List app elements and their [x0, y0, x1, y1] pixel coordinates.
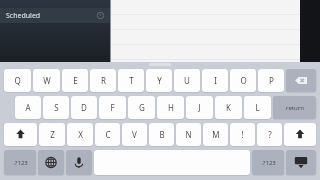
button[interactable]: E — [62, 69, 88, 92]
button[interactable]: ? — [257, 123, 282, 146]
button[interactable]: N — [176, 123, 201, 146]
staticText: return — [286, 104, 304, 112]
button[interactable]: D — [71, 96, 97, 119]
staticText: G — [139, 102, 145, 113]
staticText: X — [78, 129, 83, 140]
staticText: .?123 — [261, 159, 276, 167]
staticText: H — [168, 102, 174, 113]
staticText: R — [101, 75, 106, 86]
staticText: M — [212, 129, 220, 140]
staticText: K — [226, 102, 231, 113]
button[interactable]: .?123 — [252, 150, 284, 175]
staticText: Q — [14, 75, 21, 86]
button[interactable]: S — [43, 96, 69, 119]
button[interactable]: O — [230, 69, 256, 92]
staticText: T — [129, 75, 134, 86]
button[interactable]: I — [202, 69, 228, 92]
staticText: J — [198, 102, 201, 113]
staticText: Y — [157, 75, 162, 86]
staticText: U — [184, 75, 190, 86]
button[interactable]: return — [273, 96, 316, 119]
staticText: P — [269, 75, 274, 86]
staticText: Z — [50, 129, 55, 140]
staticText: C — [105, 129, 111, 140]
staticText: .?123 — [13, 159, 28, 167]
button[interactable]: Hide keyboard — [286, 150, 316, 175]
button[interactable]: L — [244, 96, 271, 119]
button[interactable]: W — [33, 69, 60, 92]
button[interactable]: M — [203, 123, 228, 146]
button[interactable]: J — [186, 96, 213, 119]
button[interactable]: K — [215, 96, 242, 119]
button[interactable]: ! — [230, 123, 255, 146]
staticText: I — [214, 75, 217, 86]
button[interactable]: R — [90, 69, 116, 92]
button[interactable]: Q — [4, 69, 31, 92]
button[interactable]: H — [157, 96, 184, 119]
staticText: N — [185, 129, 192, 140]
button[interactable]: .?123 — [4, 150, 36, 175]
button[interactable]: Shift — [284, 123, 316, 146]
button[interactable]: Scheduled — [0, 8, 110, 23]
staticText: Scheduled — [6, 11, 41, 21]
button[interactable]: Backspace — [286, 69, 316, 92]
button[interactable]: P — [258, 69, 284, 92]
button[interactable]: Y — [146, 69, 172, 92]
staticText: B — [159, 129, 165, 140]
staticText: F — [110, 102, 115, 113]
button[interactable]: Dictation — [66, 150, 92, 175]
button[interactable]: V — [122, 123, 147, 146]
button[interactable]: B — [149, 123, 174, 146]
button[interactable]: Z — [39, 123, 65, 146]
staticText: S — [54, 102, 59, 113]
staticText: O — [240, 75, 247, 86]
staticText: A — [25, 102, 31, 113]
staticText: L — [255, 102, 260, 113]
button[interactable]: A — [15, 96, 41, 119]
staticText: W — [43, 75, 51, 86]
button[interactable]: Switch keyboard — [38, 150, 64, 175]
button[interactable]: C — [95, 123, 120, 146]
staticText: ? — [268, 129, 272, 140]
staticText: E — [73, 75, 78, 86]
staticText: ! — [241, 129, 244, 140]
button[interactable]: T — [118, 69, 144, 92]
button[interactable]: Shift — [4, 123, 37, 146]
staticText: D — [81, 102, 87, 113]
button[interactable]: G — [128, 96, 155, 119]
staticText: V — [132, 129, 137, 140]
button[interactable]: F — [99, 96, 126, 119]
button[interactable]: X — [67, 123, 93, 146]
button[interactable]: U — [174, 69, 200, 92]
